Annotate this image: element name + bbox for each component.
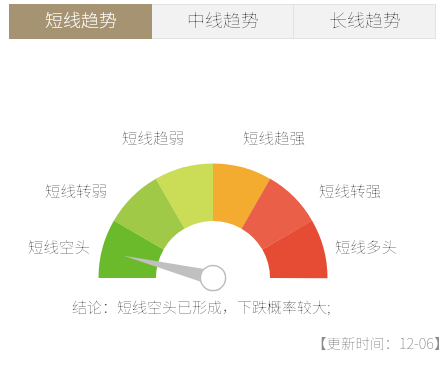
- staticText: 短线转弱: [45, 179, 108, 201]
- button[interactable]: 长线趋势: [294, 4, 436, 39]
- staticText: 【更新时间：12-06】: [312, 332, 447, 353]
- staticText: 短线多头: [335, 235, 398, 257]
- staticText: 中线趋势: [187, 6, 259, 32]
- staticText: 短线空头: [28, 235, 91, 257]
- staticText: 结论：短线空头已形成，下跌概率较大;: [72, 296, 331, 318]
- staticText: 短线趋强: [243, 126, 306, 148]
- staticText: 长线趋势: [329, 6, 401, 32]
- button[interactable]: 中线趋势: [152, 4, 294, 39]
- other: 短线趋势仪表盘: [96, 160, 332, 282]
- staticText: 短线转强: [319, 179, 382, 201]
- button[interactable]: 短线趋势: [9, 4, 152, 39]
- staticText: 短线趋弱: [122, 126, 185, 148]
- staticText: 短线趋势: [45, 6, 117, 32]
